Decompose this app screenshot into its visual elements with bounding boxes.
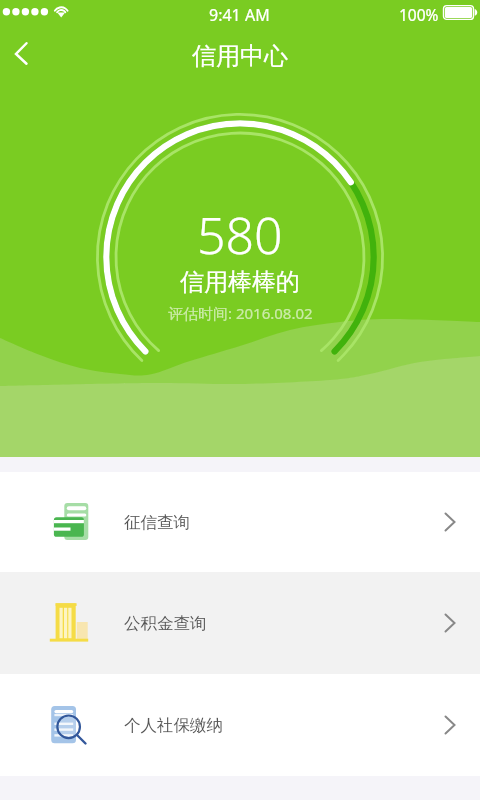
staticText: 评估时间: 2016.08.02 [168, 303, 313, 323]
staticText: 公积金查询 [124, 613, 207, 634]
button[interactable]: Back [0, 30, 48, 78]
staticText: 个人社保缴纳 [124, 715, 223, 736]
button[interactable]: 征信查询 [0, 472, 480, 572]
button[interactable]: 个人社保缴纳 [0, 674, 480, 776]
button[interactable]: 公积金查询 [0, 572, 480, 674]
staticText: 100% [399, 4, 439, 25]
staticText: 征信查询 [124, 512, 190, 533]
staticText: 9:41 AM [209, 4, 270, 26]
staticText: 580 [197, 201, 283, 269]
staticText: 信用中心 [192, 41, 288, 71]
staticText: 信用棒棒的 [180, 267, 300, 297]
